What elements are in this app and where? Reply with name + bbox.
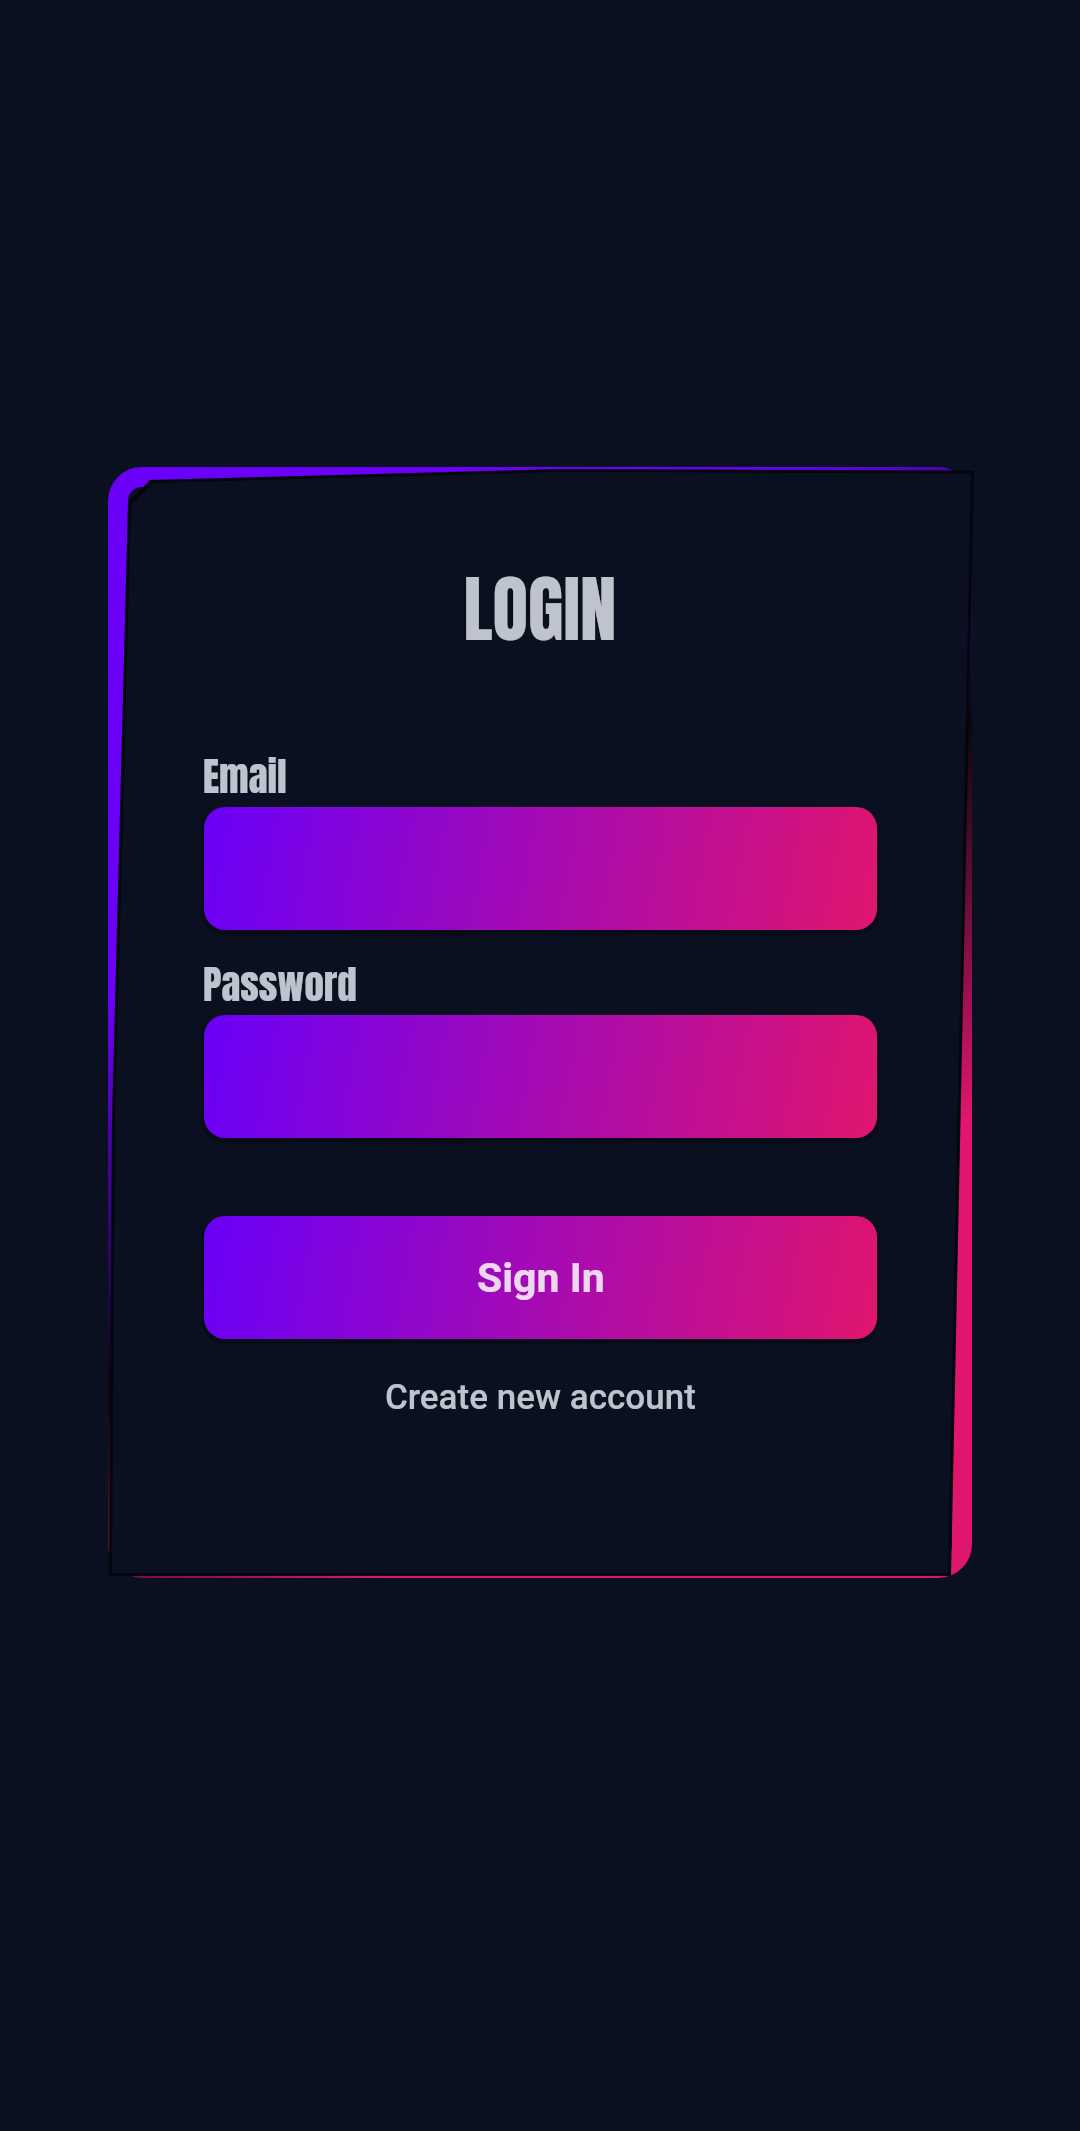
staticText: Password — [203, 955, 357, 1014]
button[interactable]: Create new account — [340, 1364, 740, 1430]
staticText: Create new account — [385, 1377, 696, 1418]
button[interactable]: Password input — [204, 1015, 877, 1138]
button[interactable]: Sign In — [204, 1216, 877, 1339]
staticText: LOGIN — [0, 554, 1080, 2131]
staticText: Sign In — [477, 1254, 605, 1302]
button[interactable]: Email input — [204, 807, 877, 930]
staticText: Email — [203, 747, 287, 806]
